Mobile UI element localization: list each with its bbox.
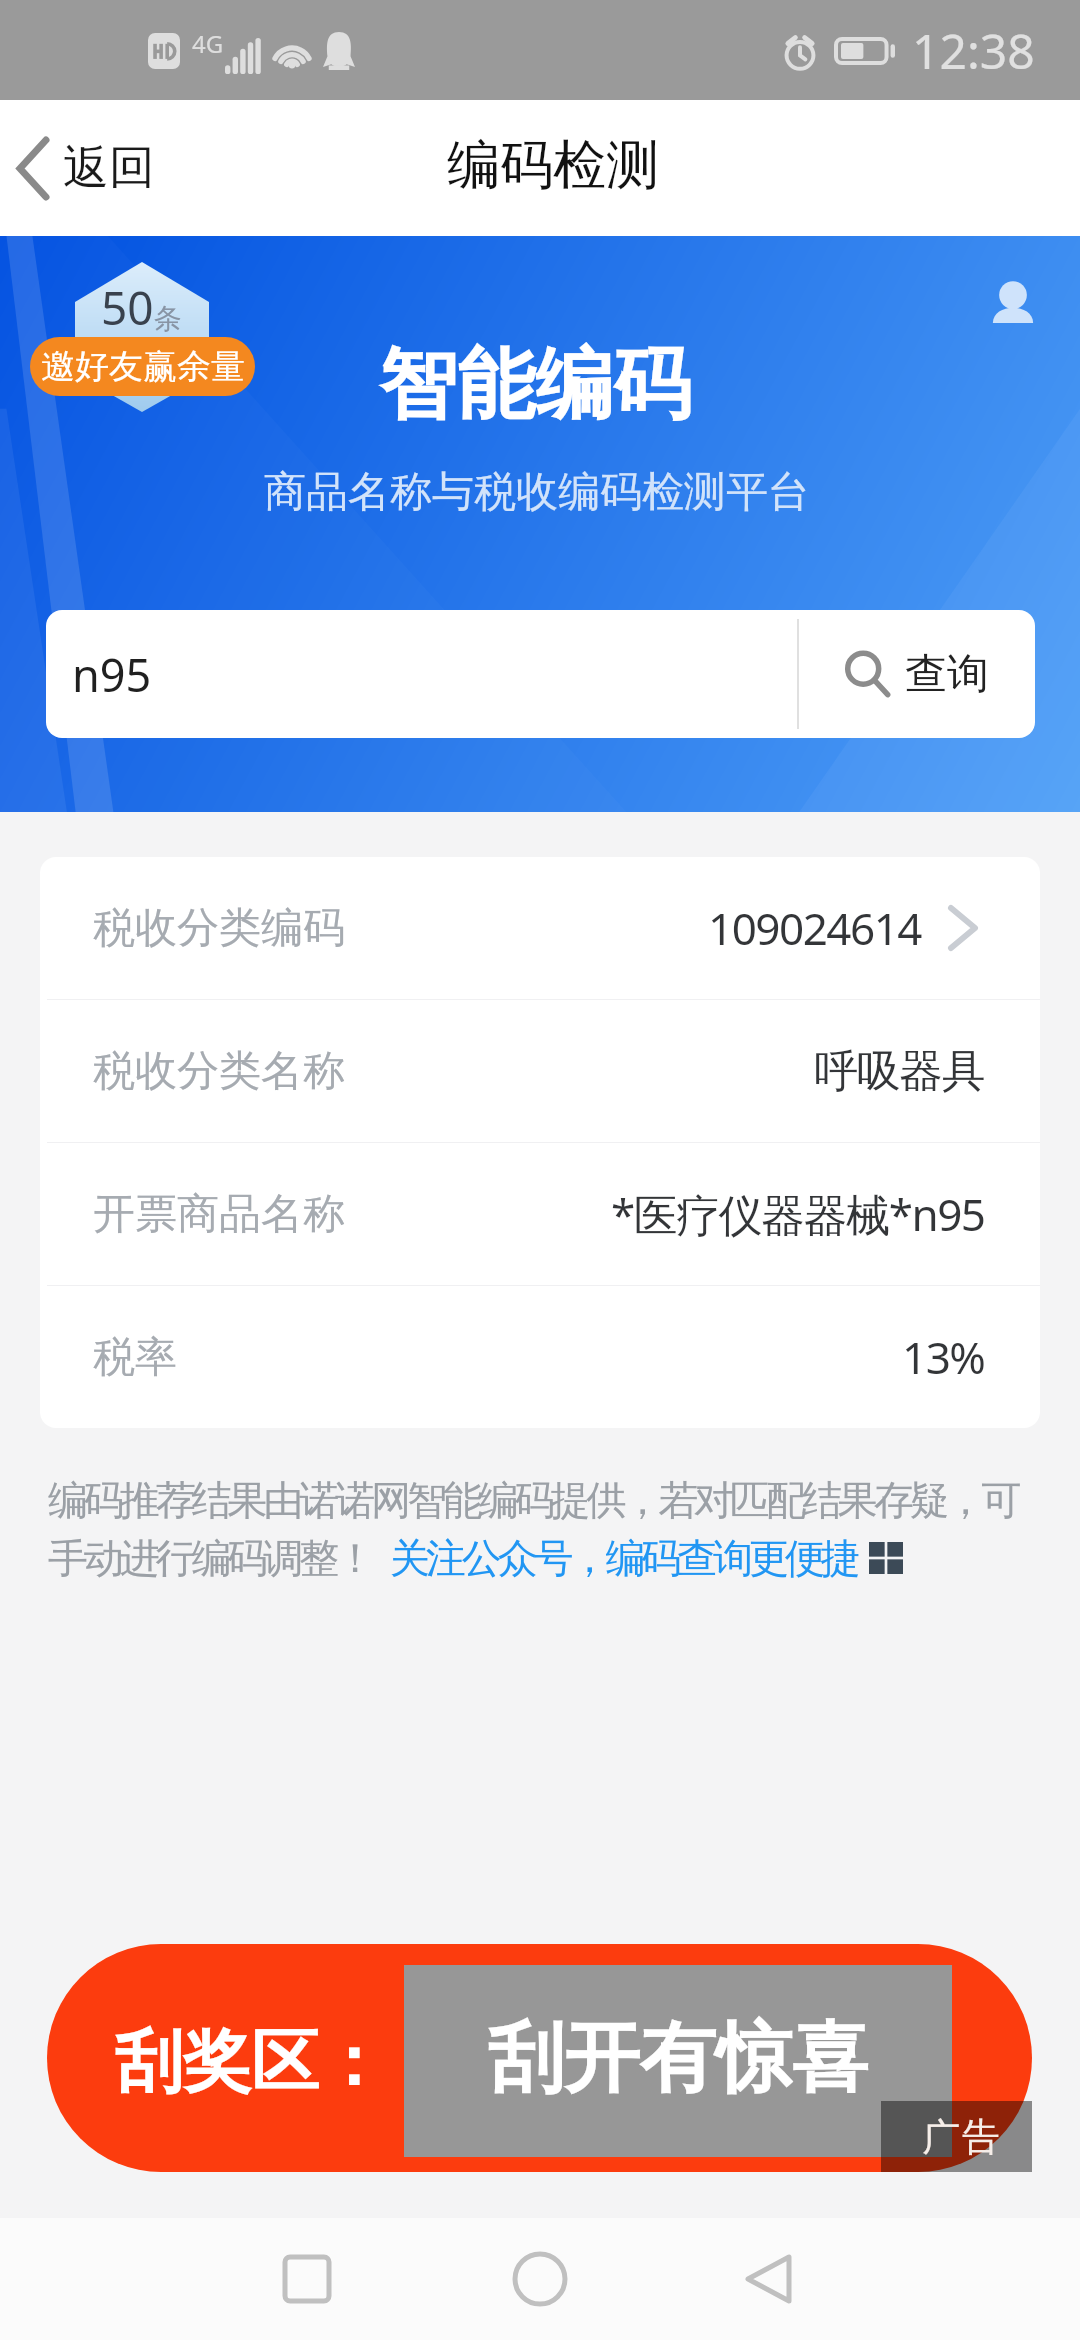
- staticText: 13%: [902, 1327, 985, 1387]
- button[interactable]: 查询: [799, 610, 1035, 738]
- staticText: 邀好友赢余量: [41, 345, 245, 388]
- button[interactable]: Recents: [262, 2218, 352, 2340]
- staticText: 50: [101, 276, 154, 339]
- button[interactable]: 返回: [0, 100, 179, 236]
- staticText: 呼吸器具: [815, 1044, 985, 1099]
- staticText: 智能编码: [379, 336, 691, 434]
- button[interactable]: Account: [971, 260, 1055, 344]
- staticText: 关注公众号，编码查询更便捷: [390, 1533, 857, 1583]
- staticText: 109024614: [708, 898, 922, 958]
- staticText: 刮奖区：: [115, 2020, 387, 2106]
- staticText: 税收分类名称: [93, 1045, 345, 1098]
- button[interactable]: Home: [495, 2218, 585, 2340]
- staticText: 12:38: [912, 18, 1035, 83]
- button[interactable]: 税收分类编码: [40, 857, 1040, 999]
- staticText: 4G: [192, 27, 224, 60]
- staticText: 编码推荐结果由诺诺网智能编码提供，若对匹配结果存疑，可: [48, 1475, 1018, 1525]
- staticText: 手动进行编码调整！: [48, 1533, 372, 1583]
- button[interactable]: 关注公众号，编码查询更便捷: [390, 1533, 903, 1583]
- staticText: 广告: [921, 2113, 1001, 2161]
- staticText: 编码检测: [447, 132, 659, 199]
- button[interactable]: 邀好友赢余量: [30, 337, 255, 396]
- staticText: 查询: [905, 648, 989, 701]
- staticText: n95: [72, 644, 152, 705]
- staticText: *医疗仪器器械*n95: [611, 1184, 985, 1244]
- button[interactable]: 刮奖区：: [47, 1944, 1032, 2172]
- staticText: 刮开有惊喜: [488, 2011, 868, 2107]
- staticText: 税率: [93, 1331, 177, 1384]
- staticText: 税收分类编码: [93, 902, 345, 955]
- staticText: 条: [154, 301, 182, 336]
- staticText: 商品名称与税收编码检测平台: [264, 466, 810, 519]
- staticText: 返回: [63, 139, 155, 197]
- button[interactable]: Back: [725, 2218, 815, 2340]
- staticText: 开票商品名称: [93, 1188, 345, 1241]
